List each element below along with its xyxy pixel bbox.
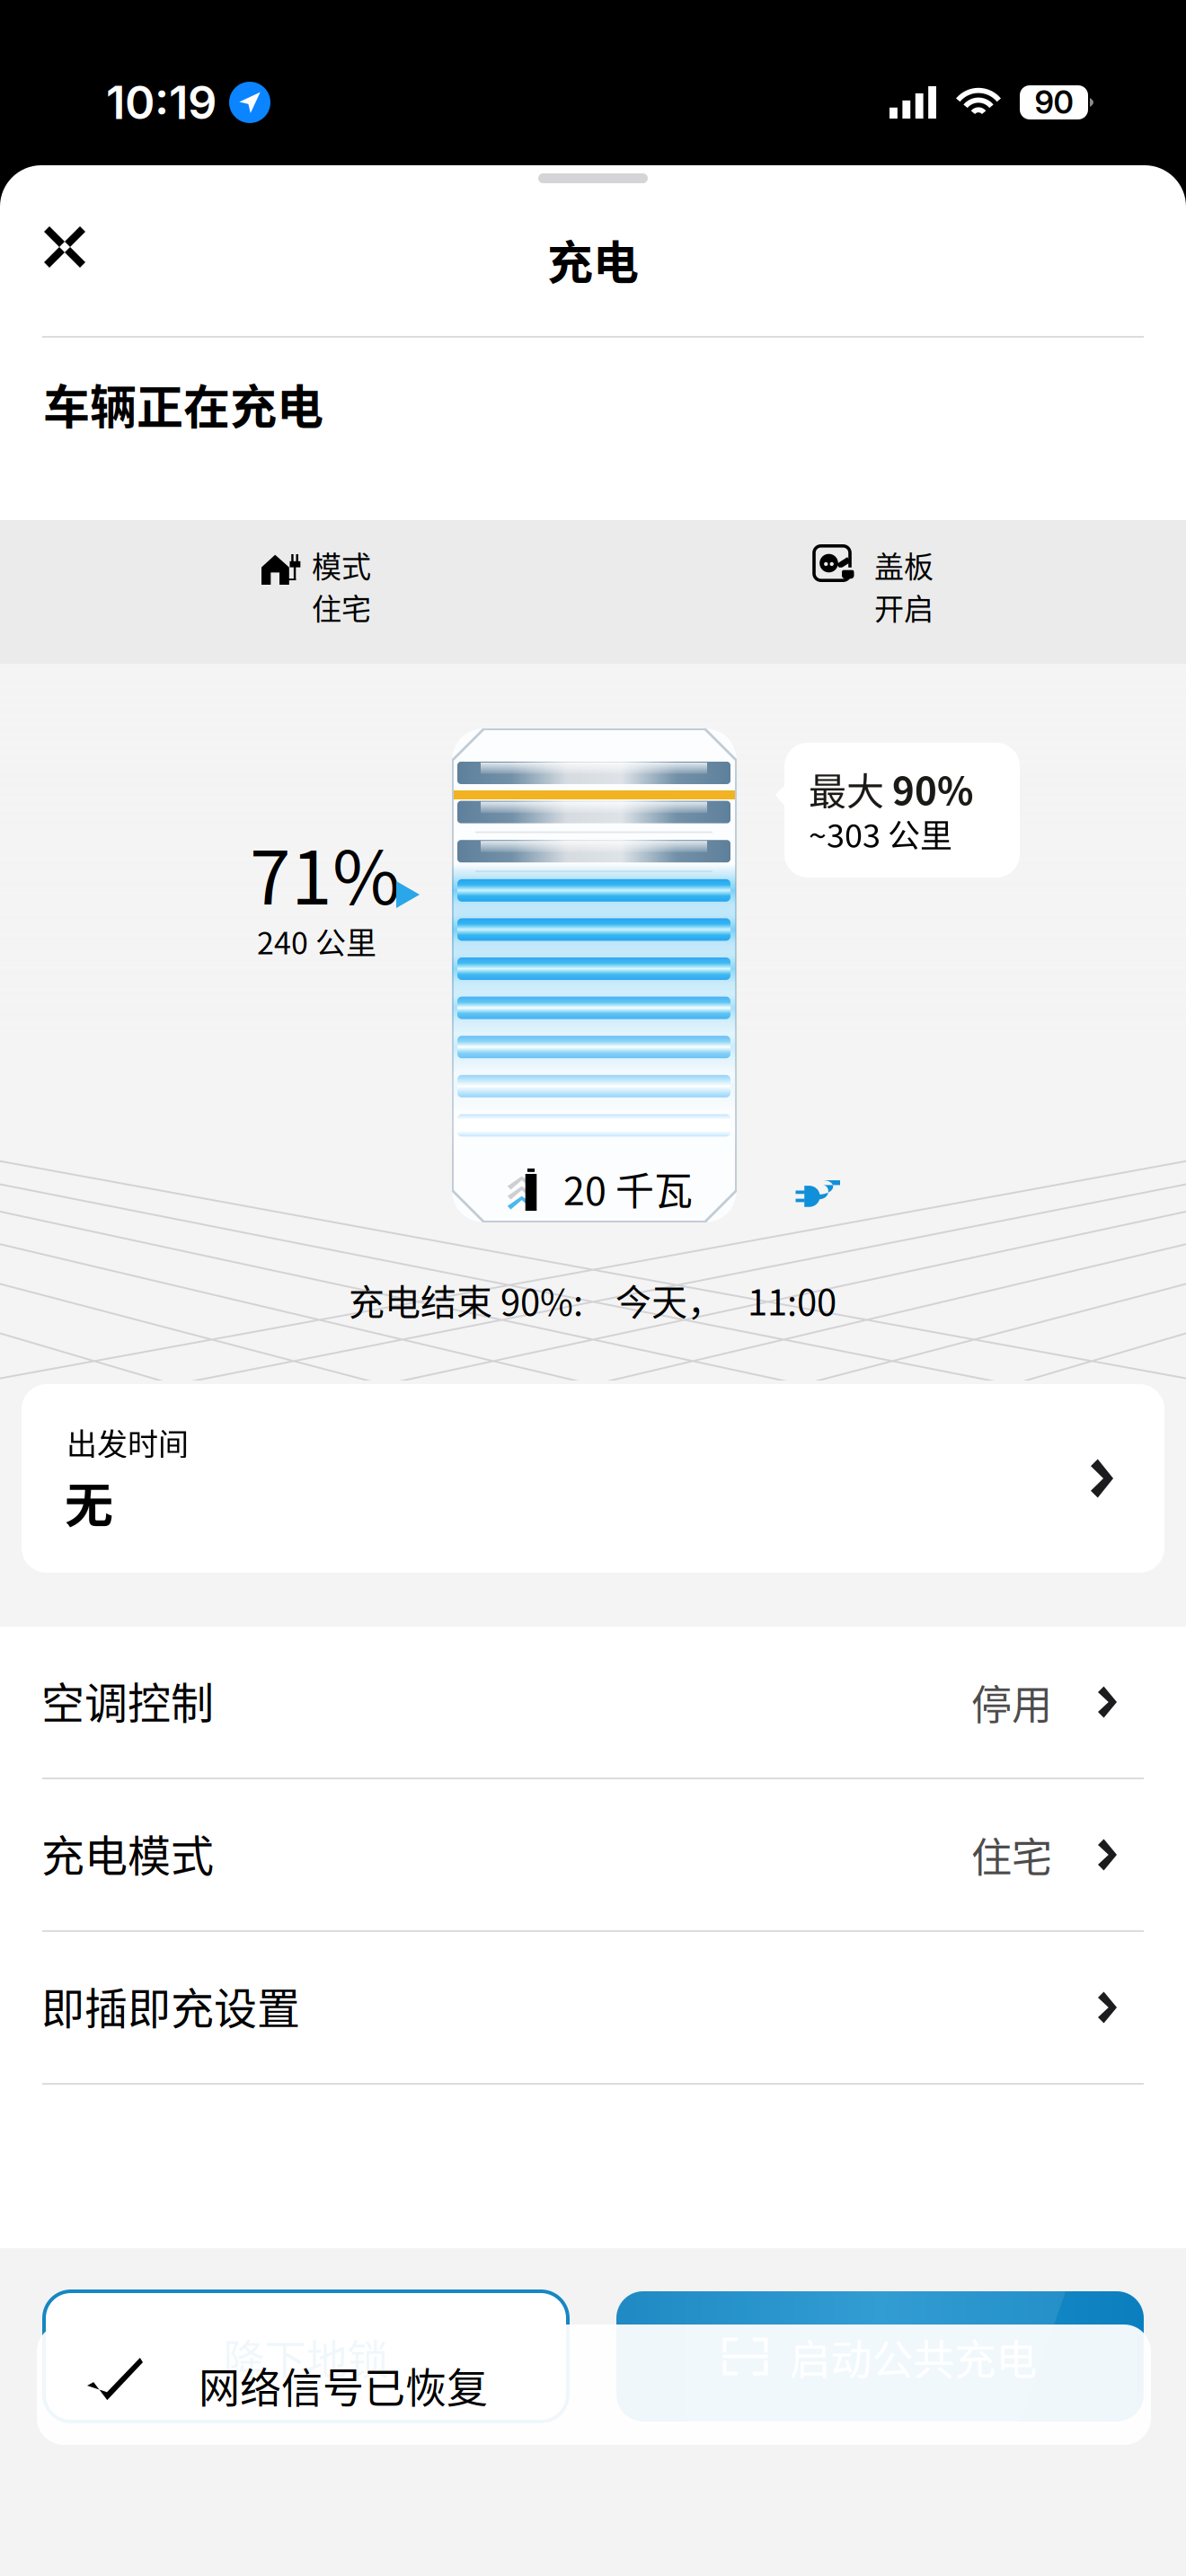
button[interactable]: 降下地锁 (44, 2291, 568, 2422)
staticText: 充电 (547, 226, 639, 293)
button[interactable]: 出发时间 (22, 1384, 1164, 1573)
staticText: 71% (250, 819, 401, 926)
staticText: 充电结束 90%: 今天， 11:00 (349, 1274, 836, 1326)
staticText: 车辆正在充电 (43, 370, 323, 438)
staticText: 240 公里 (257, 919, 376, 963)
button[interactable]: 启动公共充电 (616, 2291, 1144, 2422)
staticText: 盖板 (874, 543, 934, 586)
staticText: 90 (1035, 84, 1073, 121)
staticText: 20 千瓦 (563, 1160, 693, 1216)
staticText: 降下地锁 (223, 2326, 389, 2386)
staticText: 启动公共充电 (789, 2326, 1037, 2386)
staticText: 网络信号已恢复 (199, 2355, 488, 2415)
staticText: 10:19 (106, 75, 217, 130)
staticText: 住宅 (312, 586, 371, 629)
staticText: 模式 (312, 543, 371, 586)
staticText: 即插即充设置 (41, 1974, 300, 2037)
button[interactable]: 盖板 (593, 520, 1186, 664)
staticText: 无 (65, 1467, 113, 1537)
staticText: 出发时间 (66, 1420, 189, 1464)
button[interactable]: 即插即充设置 (0, 1932, 1186, 2085)
button[interactable]: 模式 (0, 520, 593, 664)
staticText: 最大 90% (809, 762, 973, 815)
staticText: 停用 (971, 1673, 1052, 1731)
button[interactable]: 充电模式 (0, 1779, 1186, 1932)
button[interactable]: 关闭 (19, 201, 111, 293)
staticText: 开启 (874, 586, 934, 629)
staticText: 空调控制 (41, 1669, 214, 1731)
button[interactable]: 空调控制 (0, 1627, 1186, 1779)
staticText: 住宅 (971, 1825, 1052, 1884)
staticText: ~303 公里 (809, 810, 952, 857)
staticText: 充电模式 (41, 1822, 214, 1884)
